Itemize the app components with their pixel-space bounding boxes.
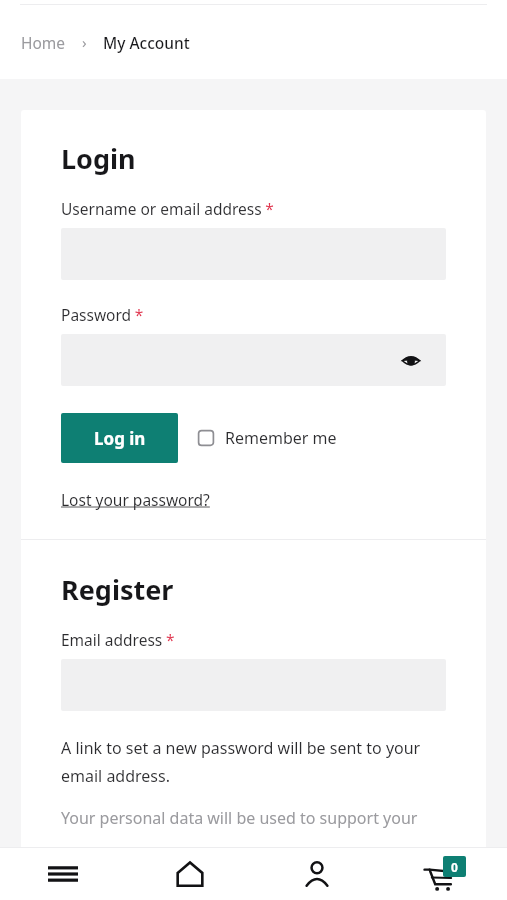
staticText: Login	[61, 140, 136, 177]
button[interactable]: Menu	[0, 847, 126, 900]
button[interactable]: Lost your password?	[61, 489, 210, 510]
staticText: Email address *	[61, 629, 175, 650]
staticText: Remember me	[225, 427, 337, 449]
button[interactable]: Home	[126, 847, 253, 900]
staticText: Log in	[94, 427, 146, 450]
button[interactable]: Log in	[61, 413, 178, 463]
staticText: Username or email address *	[61, 198, 274, 219]
button[interactable]: Cart, 0 items	[380, 847, 507, 900]
button[interactable]: Home	[21, 32, 66, 53]
staticText: Register	[61, 571, 174, 608]
staticText: Password *	[61, 304, 144, 325]
button[interactable]: Remember me	[198, 427, 337, 449]
staticText: 0	[451, 859, 458, 875]
staticText: My Account	[103, 32, 190, 53]
button[interactable]: Show password	[398, 347, 424, 373]
button[interactable]: Account	[253, 847, 380, 900]
staticText: A link to set a new password will be sen…	[61, 737, 446, 787]
button[interactable]: Show password	[61, 334, 446, 386]
staticText: ›	[82, 32, 87, 52]
staticText: Your personal data will be used to suppo…	[61, 807, 418, 829]
